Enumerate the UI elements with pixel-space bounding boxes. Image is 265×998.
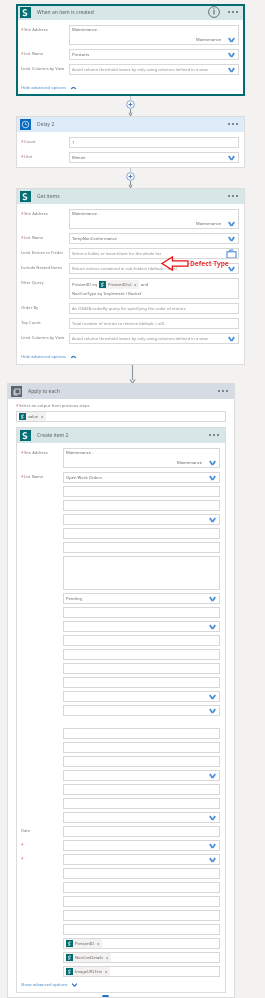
button[interactable] [63, 896, 220, 907]
button[interactable] [63, 868, 220, 879]
button[interactable] [63, 910, 220, 921]
button[interactable]: PrestartID [66, 939, 102, 948]
staticText: Avoid column threshold issues by only us… [72, 67, 227, 73]
button[interactable] [63, 784, 220, 795]
staticText: × [41, 414, 44, 420]
button[interactable]: Total number of entries to retrieve (def… [69, 318, 239, 329]
button[interactable]: ImageURLTest [66, 967, 110, 976]
button[interactable] [63, 882, 220, 893]
button[interactable]: ImageURLTest [63, 966, 220, 977]
staticText: Maintenance [177, 460, 203, 466]
button[interactable] [63, 826, 220, 837]
button[interactable]: value [19, 412, 46, 421]
staticText: Site Address [24, 211, 48, 217]
staticText: Maintenance - [66, 450, 94, 456]
staticText: * [21, 842, 24, 848]
button[interactable] [63, 514, 220, 525]
staticText: Maintenance - [72, 27, 100, 33]
button[interactable]: Get items [16, 188, 245, 204]
button[interactable] [63, 854, 220, 865]
staticText: Apply to each [28, 388, 215, 395]
staticText: Limit Columns by View [21, 335, 65, 341]
button[interactable] [63, 770, 220, 781]
staticText: Delay 2 [37, 121, 225, 128]
button[interactable]: NonConDetails [63, 952, 220, 963]
button[interactable]: PrestartID eq [69, 278, 239, 299]
staticText: * [21, 154, 24, 160]
staticText: * [21, 856, 24, 862]
button[interactable]: When an item is created [16, 4, 245, 20]
button[interactable]: Insert a new step [126, 172, 135, 181]
button[interactable] [63, 728, 220, 739]
button[interactable]: Apply to each [7, 383, 235, 399]
button[interactable]: PrestartIDv2 [99, 280, 139, 289]
button[interactable]: More commands [225, 191, 241, 201]
button[interactable]: value [16, 411, 226, 422]
button[interactable] [63, 840, 220, 851]
button[interactable]: Hide advanced options [21, 353, 77, 361]
staticText: * [16, 403, 19, 409]
button[interactable] [63, 486, 220, 497]
button[interactable] [63, 542, 220, 553]
button[interactable] [63, 705, 220, 716]
button[interactable]: Create item 2 [16, 427, 226, 443]
button[interactable] [63, 649, 220, 660]
button[interactable]: Return entries contained in sub-folders … [69, 263, 239, 274]
staticText: PrestartID [75, 941, 95, 946]
button[interactable] [63, 798, 220, 809]
button[interactable]: Show advanced options [21, 981, 78, 989]
button[interactable] [63, 500, 220, 511]
button[interactable]: Hide advanced options [21, 84, 77, 92]
button[interactable]: Delay 2 [16, 116, 245, 132]
button[interactable]: 1 [69, 137, 239, 148]
button[interactable]: Avoid column threshold issues by only us… [69, 333, 239, 344]
staticText: * [21, 450, 24, 456]
button[interactable] [63, 677, 220, 688]
button[interactable] [63, 742, 220, 753]
button[interactable]: Select a folder, or leave blank for the … [69, 248, 239, 259]
button[interactable] [63, 528, 220, 539]
button[interactable]: Avoid column threshold issues by only us… [69, 64, 239, 75]
button[interactable]: More commands [215, 386, 231, 396]
button[interactable] [63, 556, 220, 590]
staticText: Unit [24, 154, 33, 160]
button[interactable]: TempNonConformance [69, 233, 239, 244]
button[interactable] [63, 635, 220, 646]
button[interactable] [63, 924, 220, 935]
button[interactable] [63, 607, 220, 618]
staticText: Get items [37, 193, 225, 200]
staticText: * [21, 235, 24, 241]
button[interactable]: An ODATA orderBy query for specifying th… [69, 303, 239, 314]
button[interactable]: More commands [225, 7, 241, 17]
button[interactable]: Prestarts [69, 49, 239, 60]
button[interactable]: More commands [225, 119, 241, 129]
button[interactable]: More commands [206, 430, 222, 440]
staticText: Filter Query [21, 280, 44, 286]
staticText: value [28, 414, 39, 419]
staticText: Select an output from previous steps [19, 403, 90, 409]
staticText: Show advanced options [21, 982, 68, 988]
staticText: List Name [24, 474, 44, 480]
button[interactable] [63, 663, 220, 674]
staticText: Defect Type [190, 259, 229, 268]
button[interactable]: Open Work Orders [63, 472, 220, 483]
staticText: × [97, 941, 100, 947]
button[interactable]: Maintenance - [69, 25, 239, 45]
button[interactable] [63, 691, 220, 702]
button[interactable]: Insert a new step [126, 100, 135, 109]
staticText: PrestartID eq [72, 282, 97, 287]
button[interactable]: NonConDetails [66, 953, 111, 962]
staticText: Pending [66, 596, 208, 602]
button[interactable]: PrestartID [63, 938, 220, 949]
staticText: Create item 2 [37, 432, 206, 439]
button[interactable]: Maintenance - [63, 448, 220, 468]
button[interactable]: Information [208, 6, 220, 18]
staticText: List Name [24, 235, 44, 241]
button[interactable]: Pending [63, 593, 220, 604]
button[interactable] [63, 756, 220, 767]
button[interactable] [63, 621, 220, 632]
button[interactable]: Maintenance - [69, 209, 239, 229]
staticText: Include Nested Items [21, 265, 63, 271]
button[interactable] [63, 812, 220, 823]
button[interactable]: Minute [69, 152, 239, 163]
